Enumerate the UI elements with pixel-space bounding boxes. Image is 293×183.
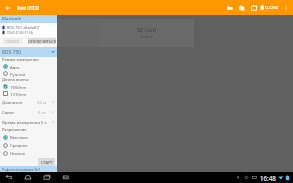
staticText: Reid OTDR — [17, 5, 40, 11]
staticText: RDS-750_dksds#01 — [7, 25, 40, 30]
staticText: 1310nm — [10, 91, 27, 97]
staticText: Высокое — [10, 134, 28, 140]
staticText: ОТКЛЮЧИТЬСЯ — [28, 39, 56, 44]
button[interactable]: Save — [248, 0, 259, 15]
button[interactable]: Back — [0, 0, 16, 15]
staticText: D-ONE — [265, 5, 279, 11]
button[interactable]: Copy — [236, 0, 247, 15]
button[interactable]: 1310nm — [0, 90, 57, 97]
button[interactable]: More options — [281, 0, 290, 15]
staticText: 5 s — [41, 119, 47, 125]
staticText: Каталог — [140, 34, 154, 39]
staticText: 5 нс — [38, 109, 47, 115]
staticText: SD Card — [137, 27, 156, 34]
button[interactable]: Recent apps — [41, 172, 53, 183]
button[interactable]: Back — [3, 172, 15, 183]
button[interactable]: Open folder — [224, 0, 235, 15]
staticText: Режим измерения — [2, 57, 39, 63]
staticText: Время измерения — [2, 119, 40, 125]
staticText: Длина волны — [2, 77, 29, 83]
staticText: Ручной — [10, 71, 26, 77]
staticText: Диапазон — [2, 99, 23, 105]
button[interactable]: Высокое — [0, 133, 57, 141]
staticText: Разрешение — [2, 127, 27, 133]
button[interactable]: ПОИСК — [3, 38, 22, 44]
button[interactable]: Среднее — [0, 141, 57, 149]
staticText: 16:48 — [260, 174, 276, 182]
button[interactable]: Screenshot — [60, 172, 72, 183]
button[interactable]: Время измерения — [0, 117, 57, 127]
button[interactable]: Сдвиг — [0, 107, 57, 117]
staticText: Низкое — [10, 150, 26, 156]
button[interactable]: Ручной — [0, 70, 57, 77]
button[interactable]: ОТКЛЮЧИТЬСЯ — [28, 38, 56, 44]
staticText: 00:80:E1:B0:F1:5A — [7, 31, 33, 35]
button[interactable]: Home — [22, 172, 34, 183]
staticText: Авто — [10, 64, 20, 70]
button[interactable]: СТАРТ — [38, 158, 55, 166]
staticText: СТАРТ — [41, 160, 53, 165]
staticText: RDS-750 — [2, 49, 21, 56]
button[interactable]: D-ONE device — [260, 0, 279, 15]
button[interactable]: Низкое — [0, 149, 57, 157]
staticText: Сдвиг — [2, 109, 15, 115]
staticText: Среднее — [10, 142, 28, 148]
button[interactable]: Диапазон — [0, 97, 57, 107]
button[interactable]: RDS-750_dksds#01 — [0, 23, 57, 37]
staticText: Рефлектограмма №1 — [2, 167, 41, 172]
button[interactable]: Авто — [0, 63, 57, 70]
staticText: 50 м — [37, 99, 47, 105]
button[interactable]: 1550nm — [0, 83, 57, 90]
staticText: ПОИСК — [6, 39, 20, 44]
staticText: 1550nm — [10, 84, 27, 90]
staticText: Bluetooth — [2, 16, 22, 22]
button[interactable]: RDS-750 — [0, 47, 57, 57]
